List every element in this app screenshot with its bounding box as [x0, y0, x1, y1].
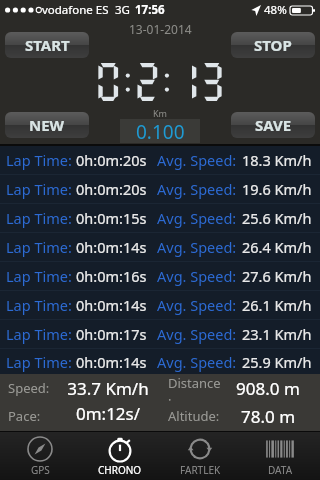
button[interactable]: Lap Time:	[0, 291, 320, 319]
staticText: Lap Time:	[6, 179, 72, 199]
staticText: 17:56	[135, 2, 165, 18]
staticText: 26.1 Km/h	[242, 295, 312, 315]
staticText: 0h:0m:17s	[76, 324, 147, 344]
staticText: Lap Time:	[6, 237, 72, 257]
staticText: Lap Time:	[6, 295, 72, 315]
button[interactable]: Lap Time:	[0, 320, 320, 348]
staticText: FARTLEK	[180, 463, 221, 477]
staticText: 0h:0m:20s	[76, 179, 147, 199]
staticText: 25.9 Km/h	[242, 352, 312, 372]
staticText: NEW	[29, 115, 65, 135]
staticText: SAVE	[255, 115, 292, 135]
staticText: 0h:0m:15s	[76, 208, 147, 228]
staticText: Avg. Speed:	[157, 208, 237, 228]
staticText: Avg. Speed:	[157, 150, 237, 170]
button[interactable]: Lap Time:	[0, 146, 320, 174]
staticText: 0m:12s/Lap	[62, 402, 154, 430]
staticText: Avg. Speed:	[157, 352, 237, 372]
staticText: 0h:0m:14s	[76, 237, 147, 257]
staticText: 0h:0m:16s	[76, 266, 147, 286]
staticText: 0.100	[136, 119, 185, 143]
staticText: Lap Time:	[6, 266, 72, 286]
staticText: 27.6 Km/h	[242, 266, 312, 286]
staticText: Km	[153, 107, 167, 119]
staticText: Avg. Speed:	[157, 237, 237, 257]
staticText: Lap Time:	[6, 150, 72, 170]
staticText: Lap Time:	[6, 324, 72, 344]
staticText: Speed:	[8, 379, 62, 397]
staticText: Altitude:	[168, 407, 222, 425]
staticText: 0h:0m:14s	[76, 352, 147, 372]
staticText: Pace:	[8, 407, 62, 425]
button[interactable]: Lap Time:	[0, 204, 320, 232]
staticText: DATA	[268, 463, 293, 477]
staticText: STOP	[254, 35, 292, 55]
staticText: 18.3 Km/h	[242, 150, 312, 170]
button[interactable]: Lap Time:	[0, 175, 320, 203]
button[interactable]: CHRONO	[80, 432, 160, 480]
button[interactable]: Lap Time:	[0, 233, 320, 261]
staticText: Avg. Speed:	[157, 266, 237, 286]
staticText: Lap Time:	[6, 208, 72, 228]
staticText: 0h:0m:14s	[76, 295, 147, 315]
staticText: 33.7 Km/h	[62, 377, 154, 400]
button[interactable]: SAVE	[231, 112, 315, 138]
staticText: vodafone ES	[42, 2, 109, 18]
button[interactable]: DATA	[240, 432, 320, 480]
button[interactable]: NEW	[5, 112, 89, 138]
staticText: 23.1 Km/h	[242, 324, 312, 344]
button[interactable]: FARTLEK	[160, 432, 240, 480]
staticText: 48%	[264, 2, 287, 18]
staticText: START	[25, 35, 70, 55]
staticText: Distance:	[168, 374, 222, 402]
staticText: 26.4 Km/h	[242, 237, 312, 257]
staticText: Avg. Speed:	[157, 324, 237, 344]
staticText: 19.6 Km/h	[242, 179, 312, 199]
button[interactable]: Lap Time:	[0, 349, 320, 374]
staticText: GPS	[31, 463, 50, 477]
staticText: 3G	[115, 2, 130, 18]
staticText: 78.0 m	[222, 405, 314, 428]
staticText: 0h:0m:20s	[76, 150, 147, 170]
staticText: 908.0 m	[222, 377, 314, 400]
staticText: Lap Time:	[6, 352, 72, 372]
staticText: Avg. Speed:	[157, 179, 237, 199]
staticText: Avg. Speed:	[157, 295, 237, 315]
button[interactable]: START	[5, 32, 89, 58]
button[interactable]: STOP	[231, 32, 315, 58]
staticText: CHRONO	[98, 463, 142, 477]
button[interactable]: GPS	[0, 432, 80, 480]
staticText: 25.6 Km/h	[242, 208, 312, 228]
button[interactable]: Lap Time:	[0, 262, 320, 290]
staticText: 13-01-2014	[129, 21, 192, 37]
